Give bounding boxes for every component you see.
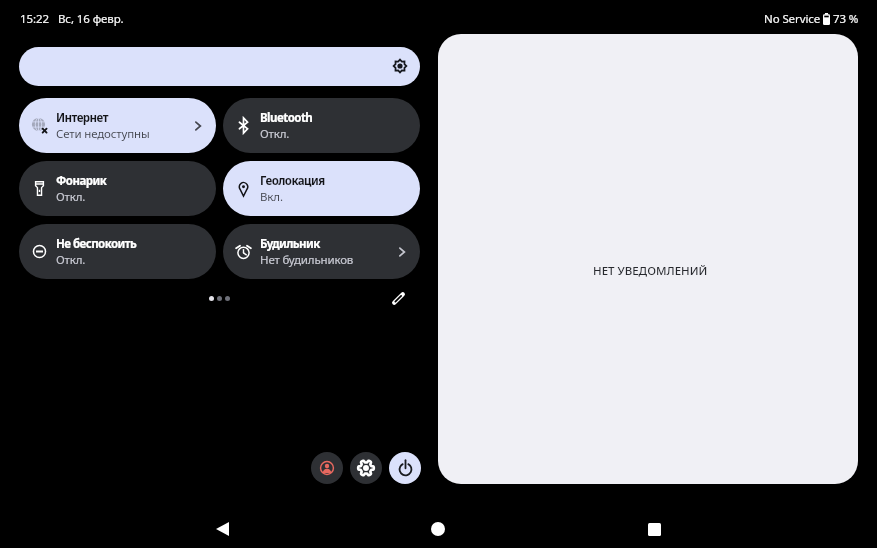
button[interactable]: Brightness bbox=[19, 47, 420, 86]
button[interactable]: Home bbox=[418, 509, 458, 548]
staticText: 73 % bbox=[833, 11, 859, 27]
staticText: No Service bbox=[764, 11, 821, 27]
button[interactable]: Геолокация bbox=[223, 161, 420, 216]
button[interactable]: НЕТ УВЕДОМЛЕНИЙ bbox=[438, 34, 858, 484]
staticText: Геолокация bbox=[260, 173, 325, 189]
staticText: 15:22 bbox=[20, 11, 49, 27]
button[interactable]: Edit bbox=[385, 285, 412, 312]
button[interactable]: Будильник bbox=[223, 224, 420, 279]
staticText: Bluetooth bbox=[260, 110, 313, 126]
button[interactable]: Не беспокоить bbox=[19, 224, 216, 279]
staticText: Будильник bbox=[260, 236, 320, 252]
staticText: Откл. bbox=[56, 189, 86, 205]
staticText: Откл. bbox=[260, 126, 290, 142]
staticText: Вкл. bbox=[260, 189, 283, 205]
button[interactable]: Bluetooth bbox=[223, 98, 420, 153]
button[interactable]: Интернет bbox=[19, 98, 216, 153]
button[interactable]: Фонарик bbox=[19, 161, 216, 216]
button[interactable]: Power bbox=[389, 452, 421, 484]
staticText: Откл. bbox=[56, 252, 86, 268]
button[interactable]: Settings bbox=[350, 452, 382, 484]
staticText: Сети недоступны bbox=[56, 126, 150, 142]
button[interactable]: User bbox=[311, 452, 343, 484]
staticText: Нет будильников bbox=[260, 252, 354, 268]
button[interactable]: Recents bbox=[634, 509, 674, 548]
button[interactable]: Back bbox=[202, 509, 242, 548]
staticText: Интернет bbox=[56, 110, 108, 126]
staticText: Вс, 16 февр. bbox=[58, 11, 124, 27]
staticText: Фонарик bbox=[56, 173, 107, 189]
staticText: Не беспокоить bbox=[56, 236, 137, 252]
staticText: НЕТ УВЕДОМЛЕНИЙ bbox=[593, 263, 708, 279]
